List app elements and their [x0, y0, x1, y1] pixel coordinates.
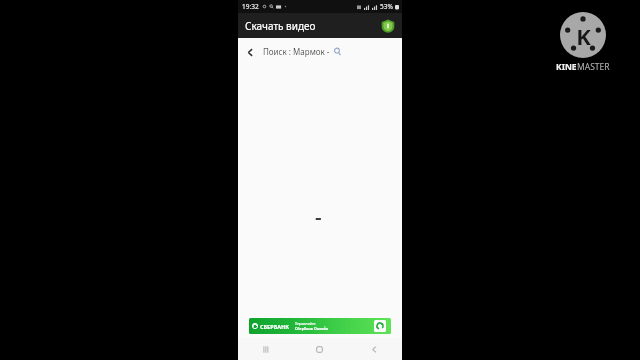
staticText: 19:32 — [242, 2, 259, 11]
staticText: СБЕРБАНК — [260, 323, 290, 330]
button[interactable]: Назад — [347, 338, 402, 360]
button[interactable]: Недавние — [238, 338, 292, 360]
button[interactable]: Домой — [292, 338, 347, 360]
button[interactable]: Защита — [379, 17, 397, 35]
button[interactable]: СБЕРБАНК — [249, 318, 391, 334]
staticText: KINE — [556, 61, 577, 73]
staticText: MASTER — [577, 61, 610, 73]
staticText: Поиск : Мармок - — [263, 46, 330, 57]
button[interactable]: Назад — [242, 44, 258, 60]
staticText: K — [576, 21, 591, 49]
staticText: 53% — [380, 2, 393, 11]
button[interactable]: Поиск : Мармок - — [263, 46, 342, 57]
button[interactable]: Скачать видео — [245, 19, 316, 33]
staticText: Скачать видео — [245, 19, 316, 33]
staticText: СберБанк Онлайн — [295, 326, 329, 331]
staticText: Управляйте — [295, 321, 316, 326]
